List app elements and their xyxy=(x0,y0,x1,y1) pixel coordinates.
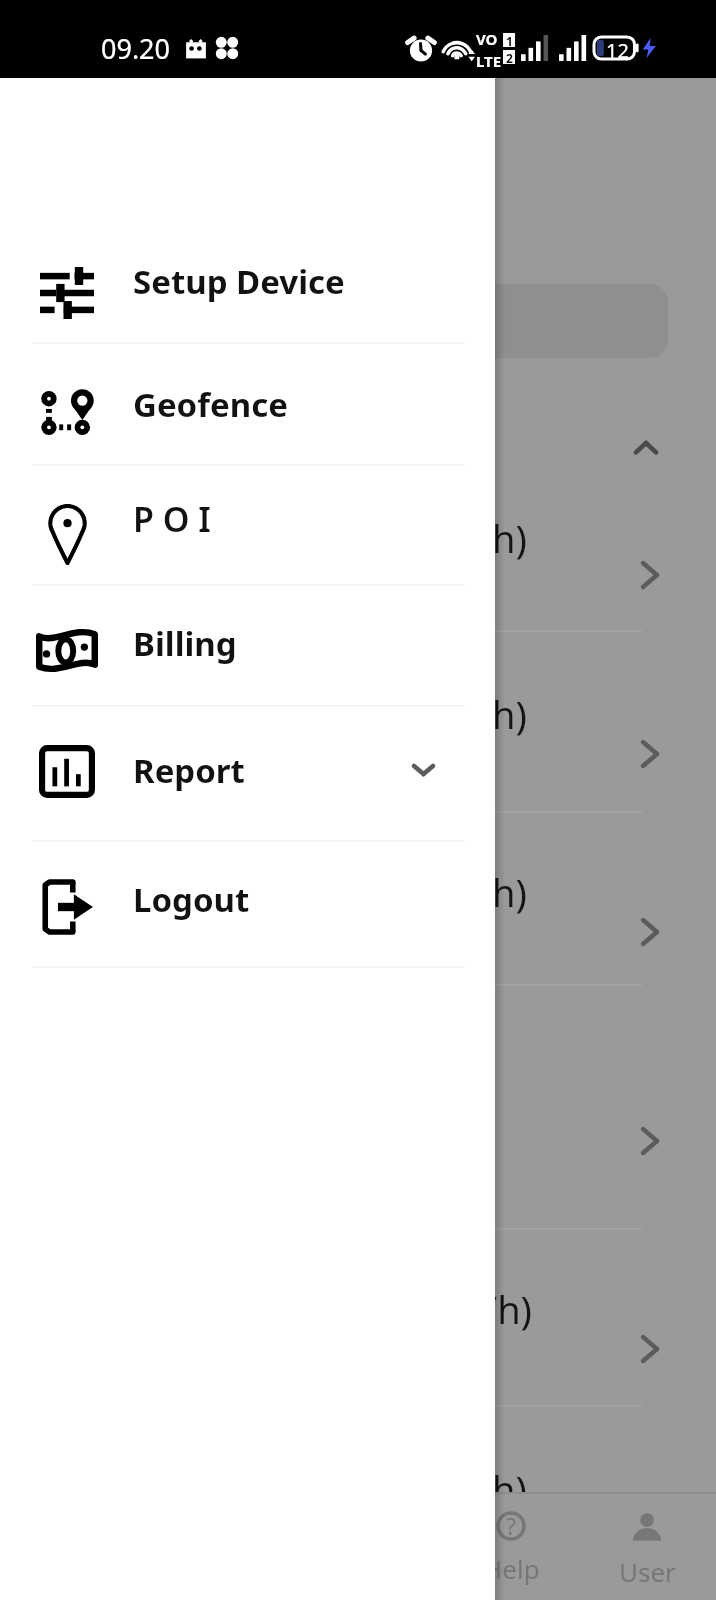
staticText: Report xyxy=(133,748,245,793)
staticText: 12 xyxy=(606,37,629,59)
staticText: Setup Device xyxy=(133,259,345,304)
staticText: 1 xyxy=(506,33,513,47)
staticText: /h) xyxy=(483,1283,533,1335)
staticText: Billing xyxy=(133,621,237,666)
staticText: h) xyxy=(492,688,527,740)
staticText: 09.20 xyxy=(101,30,171,67)
button[interactable]: Open xyxy=(641,1127,659,1155)
staticText: Geofence xyxy=(133,382,288,427)
staticText: 2 xyxy=(506,50,513,64)
staticText: Help xyxy=(483,1551,540,1586)
button[interactable]: Setup Device xyxy=(0,220,495,342)
staticText: Logout xyxy=(133,877,250,922)
button[interactable]: Billing xyxy=(0,586,495,705)
button[interactable]: Logout xyxy=(0,842,495,966)
staticText: User xyxy=(619,1554,676,1589)
button[interactable]: Collapse xyxy=(628,430,664,466)
staticText: VO xyxy=(476,29,498,49)
button[interactable]: Open xyxy=(641,1335,659,1363)
staticText: P O I xyxy=(133,496,211,542)
button[interactable]: Geofence xyxy=(0,344,495,464)
button[interactable]: P O I xyxy=(0,466,495,584)
staticText: h) xyxy=(492,512,527,564)
staticText: h) xyxy=(492,866,527,918)
button[interactable]: Report xyxy=(0,707,495,840)
button[interactable]: User xyxy=(591,1492,703,1600)
button[interactable]: ? xyxy=(455,1492,567,1600)
button[interactable]: Open xyxy=(641,918,659,946)
staticText: LTE xyxy=(476,51,502,67)
staticText: ? xyxy=(506,1510,516,1540)
button[interactable]: Open xyxy=(641,740,659,768)
staticText: h) xyxy=(492,1463,527,1515)
button[interactable]: Expand Report xyxy=(411,763,436,777)
button[interactable]: Open xyxy=(641,561,659,589)
